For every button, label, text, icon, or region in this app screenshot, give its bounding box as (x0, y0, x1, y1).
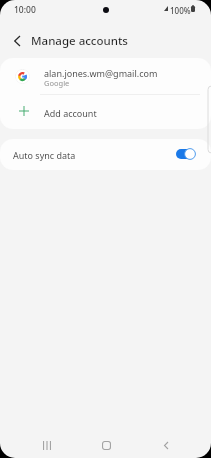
staticText: Auto sync data (13, 149, 76, 161)
staticText: 10:00 (14, 4, 36, 16)
button[interactable]: Home (86, 425, 126, 458)
staticText: Google (44, 78, 70, 88)
button[interactable]: Auto sync data (0, 139, 211, 170)
staticText: 100% (170, 5, 191, 16)
button[interactable]: Recent apps (27, 425, 67, 458)
button[interactable]: Back (146, 425, 186, 458)
staticText: alan.jones.wm@gmail.com (44, 67, 158, 79)
button[interactable]: Navigate up (5, 29, 29, 53)
button[interactable]: alan.jones.wm@gmail.com (0, 58, 211, 94)
staticText: Add account (44, 107, 97, 119)
button[interactable]: Add account (0, 94, 211, 129)
staticText: Manage accounts (31, 33, 128, 49)
